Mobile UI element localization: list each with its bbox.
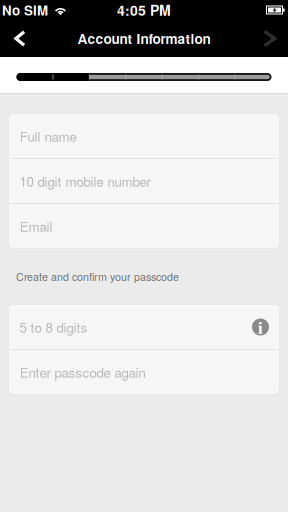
staticText: Email bbox=[19, 216, 52, 236]
button[interactable]: Back bbox=[0, 20, 40, 57]
staticText: Enter passcode again bbox=[19, 362, 145, 382]
button[interactable]: 5 to 8 digits bbox=[9, 305, 279, 349]
button[interactable]: 10 digit mobile number bbox=[9, 159, 279, 203]
button[interactable]: Enter passcode again bbox=[9, 350, 279, 394]
staticText: No SIM bbox=[2, 0, 48, 20]
staticText: Create and confirm your passcode bbox=[16, 269, 179, 284]
staticText: 5 to 8 digits bbox=[19, 317, 87, 337]
button[interactable]: Next bbox=[251, 20, 288, 57]
staticText: Full name bbox=[19, 126, 76, 146]
staticText: 4:05 PM bbox=[117, 0, 171, 20]
staticText: 10 digit mobile number bbox=[19, 171, 150, 191]
button[interactable]: Email bbox=[9, 204, 279, 248]
button[interactable]: Full name bbox=[9, 114, 279, 158]
staticText: i bbox=[258, 314, 263, 340]
staticText: Account Information bbox=[77, 29, 210, 48]
